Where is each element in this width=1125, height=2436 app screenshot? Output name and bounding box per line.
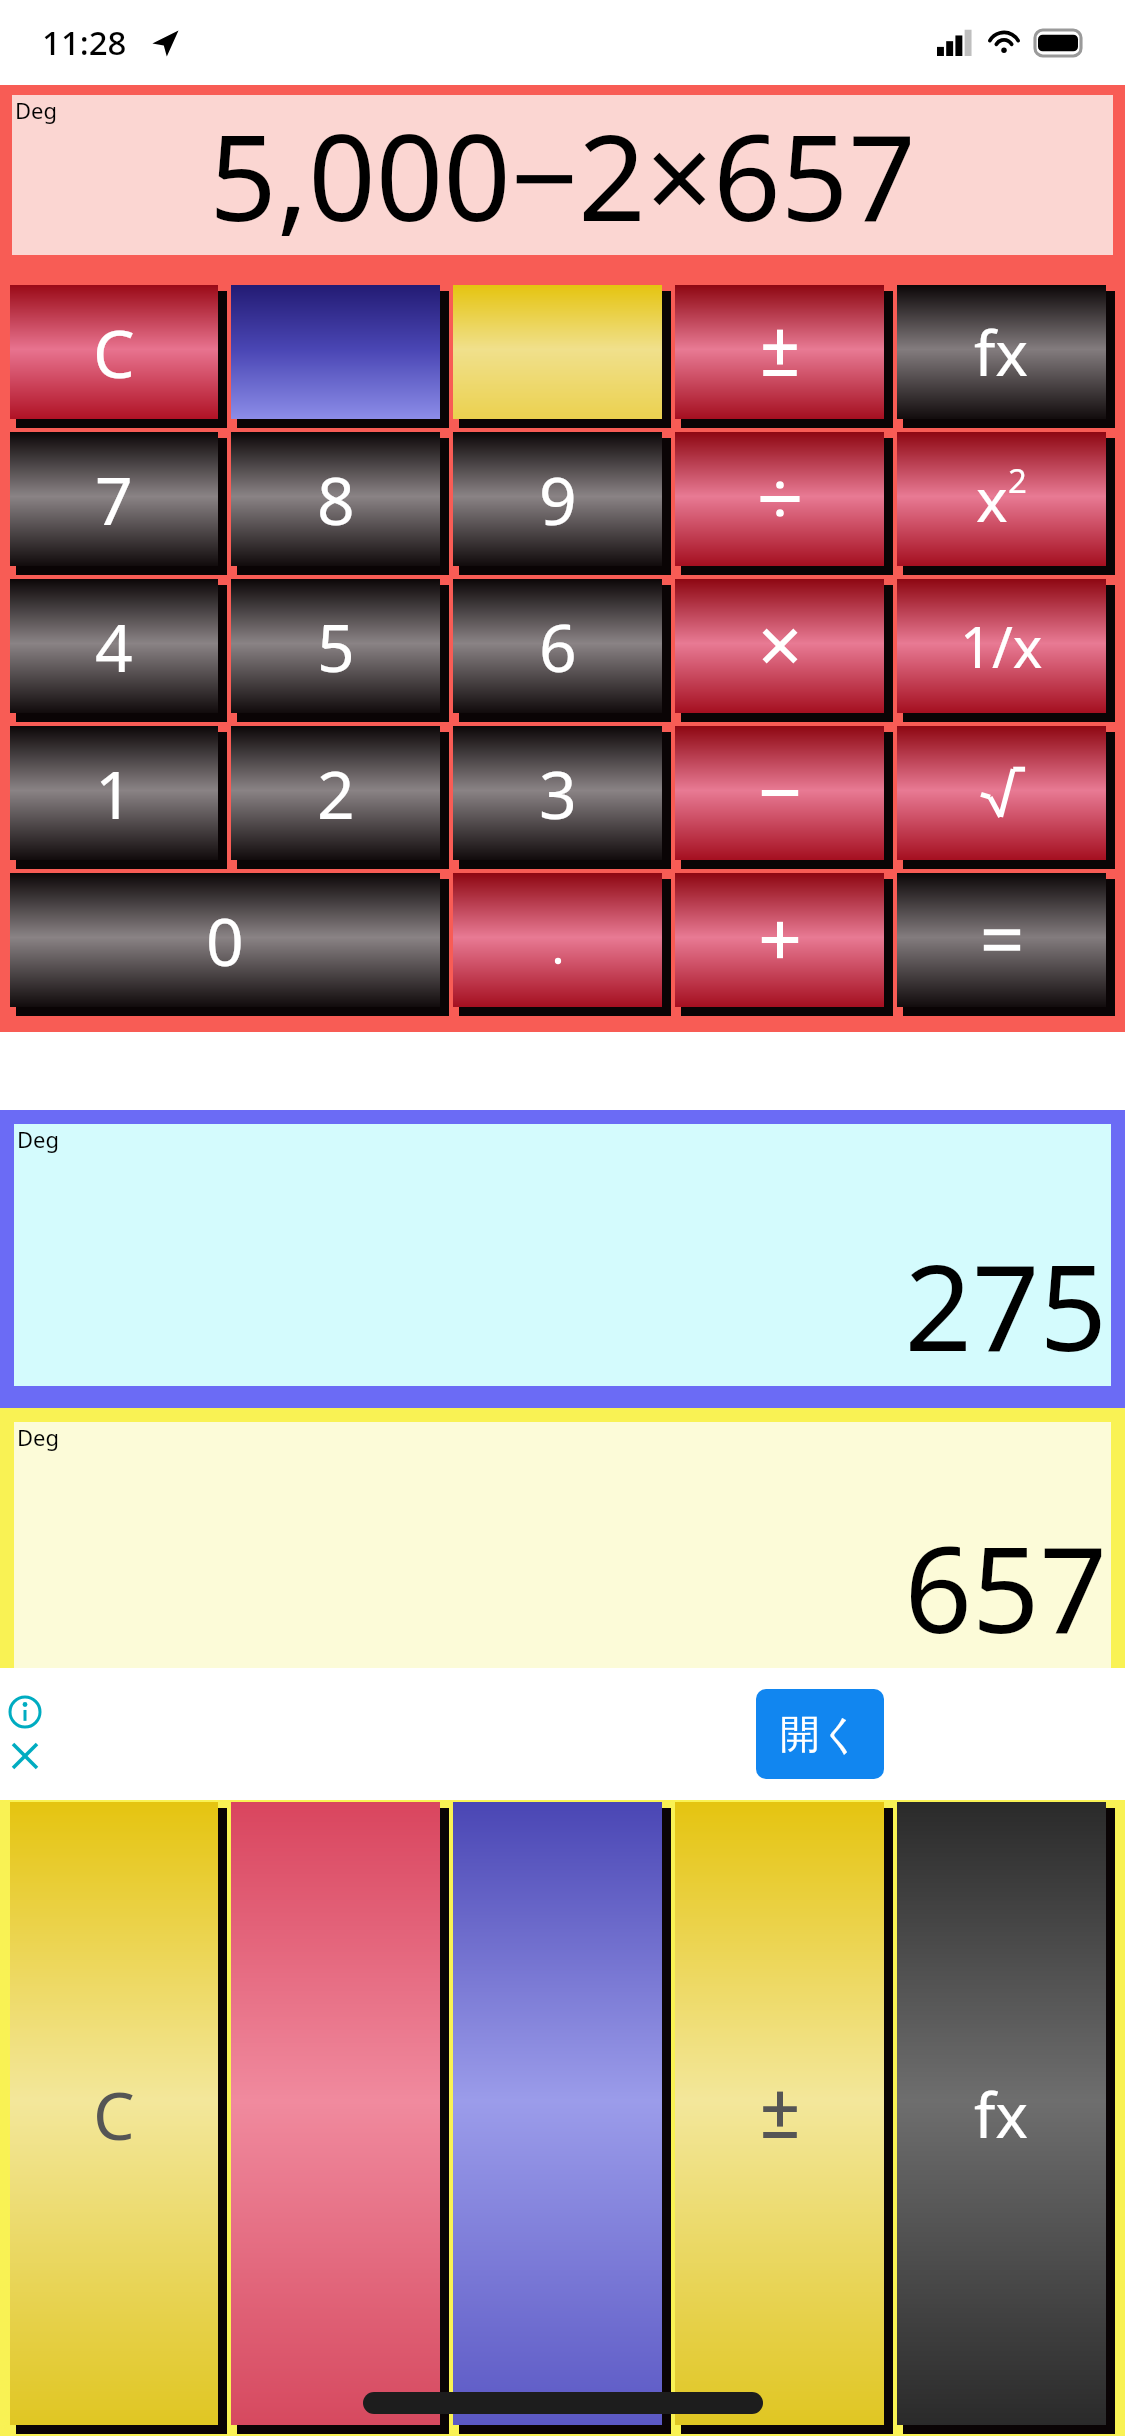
button[interactable]: 1 bbox=[10, 726, 227, 869]
staticText: 1/x bbox=[960, 608, 1043, 684]
button[interactable]: 3 bbox=[453, 726, 671, 869]
staticText: 275 bbox=[18, 1225, 1107, 1386]
button[interactable]: Yellow memory bbox=[453, 285, 671, 428]
button[interactable] bbox=[897, 873, 1115, 1016]
staticText: 3 bbox=[539, 748, 577, 838]
staticText: 7 bbox=[95, 454, 133, 544]
staticText: Deg bbox=[15, 95, 57, 125]
button[interactable]: 9 bbox=[453, 432, 671, 575]
staticText: fx bbox=[974, 2072, 1029, 2156]
staticText: C bbox=[93, 2069, 135, 2159]
button[interactable] bbox=[675, 285, 893, 428]
button[interactable]: Pink memory bbox=[231, 1802, 449, 2434]
staticText: 5,000−2×657 bbox=[16, 95, 1109, 255]
button[interactable]: C bbox=[10, 1802, 227, 2434]
button[interactable]: 1/x bbox=[897, 579, 1115, 722]
staticText: 5 bbox=[317, 601, 355, 691]
staticText: 開く bbox=[780, 1709, 861, 1759]
button[interactable]: 2 bbox=[231, 726, 449, 869]
staticText: 657 bbox=[18, 1507, 1107, 1668]
staticText: Deg bbox=[17, 1422, 59, 1452]
button[interactable]: 4 bbox=[10, 579, 227, 722]
button[interactable]: Blue memory bbox=[453, 1802, 671, 2434]
button[interactable] bbox=[675, 432, 893, 575]
button[interactable]: fx bbox=[897, 1802, 1115, 2434]
button[interactable] bbox=[675, 579, 893, 722]
button[interactable]: Close ad bbox=[8, 1739, 42, 1773]
button[interactable] bbox=[897, 726, 1115, 869]
staticText: 2 bbox=[317, 748, 355, 838]
button[interactable] bbox=[675, 726, 893, 869]
button[interactable]: 6 bbox=[453, 579, 671, 722]
staticText: 1 bbox=[95, 748, 133, 838]
staticText: 8 bbox=[317, 454, 355, 544]
button[interactable]: C bbox=[10, 285, 227, 428]
staticText: 9 bbox=[539, 454, 577, 544]
button[interactable]: 開く bbox=[756, 1689, 884, 1779]
staticText: fx bbox=[974, 310, 1029, 394]
staticText: 2 bbox=[1008, 458, 1027, 503]
button[interactable]: 8 bbox=[231, 432, 449, 575]
button[interactable] bbox=[675, 873, 893, 1016]
staticText: 11:28 bbox=[42, 20, 127, 65]
staticText: 6 bbox=[539, 601, 577, 691]
button[interactable]: 0 bbox=[10, 873, 449, 1016]
staticText: 0 bbox=[206, 895, 244, 985]
button[interactable]: Ad info bbox=[8, 1695, 42, 1729]
staticText: Deg bbox=[17, 1124, 59, 1154]
staticText: C bbox=[93, 307, 135, 397]
button[interactable]: x bbox=[897, 432, 1115, 575]
button[interactable] bbox=[675, 1802, 893, 2434]
button[interactable]: 5 bbox=[231, 579, 449, 722]
staticText: x bbox=[976, 458, 1008, 540]
button[interactable] bbox=[453, 873, 671, 1016]
staticText: 4 bbox=[95, 601, 133, 691]
button[interactable]: Blue memory bbox=[231, 285, 449, 428]
button[interactable]: 7 bbox=[10, 432, 227, 575]
button[interactable]: fx bbox=[897, 285, 1115, 428]
